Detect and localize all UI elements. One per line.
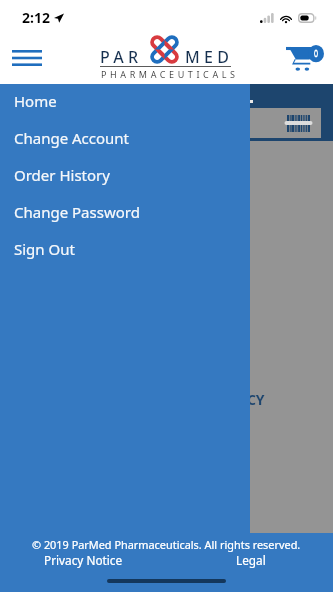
staticText: © 2019 ParMed Pharmaceuticals. All right… bbox=[32, 537, 301, 552]
staticText: PAR bbox=[100, 46, 143, 68]
staticText: Change Password bbox=[14, 202, 140, 222]
button[interactable]: Change Password bbox=[0, 193, 250, 230]
button[interactable]: Order History bbox=[0, 156, 250, 193]
staticText: Order History bbox=[14, 165, 110, 185]
button[interactable]: Change Account bbox=[0, 119, 250, 156]
button[interactable]: Home bbox=[0, 82, 250, 119]
staticText: PHARMACEUTICALS bbox=[101, 68, 237, 80]
button[interactable]: Privacy Notice bbox=[44, 552, 123, 568]
staticText: Home bbox=[14, 91, 57, 111]
staticText: PHARMACY bbox=[186, 390, 265, 409]
staticText: 2:12 bbox=[22, 8, 50, 27]
staticText: Change Account bbox=[14, 128, 130, 148]
staticText: Sign Out bbox=[14, 239, 75, 259]
staticText: MED bbox=[185, 46, 234, 68]
button[interactable]: Open navigation menu bbox=[2, 39, 52, 76]
button[interactable]: Legal bbox=[236, 552, 266, 568]
button[interactable]: Sign Out bbox=[0, 230, 250, 267]
button[interactable]: Shopping cart bbox=[283, 37, 327, 81]
